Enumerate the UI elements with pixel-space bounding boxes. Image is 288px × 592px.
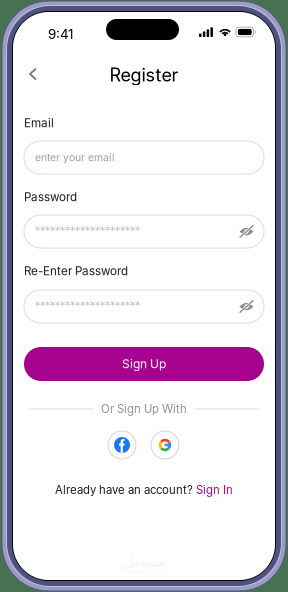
button[interactable]: Sign In — [196, 483, 233, 497]
button[interactable]: Back — [20, 61, 46, 87]
staticText: Already have an account? — [55, 483, 196, 497]
staticText: Or Sign Up With — [101, 402, 187, 416]
staticText: Sign In — [196, 483, 233, 497]
button[interactable]: Sign Up — [24, 347, 264, 381]
staticText: Sign Up — [122, 357, 166, 371]
staticText: Password — [24, 190, 77, 202]
staticText: ********************* — [35, 299, 140, 312]
button[interactable]: Sign up with Facebook — [108, 431, 136, 459]
staticText: enter your email — [35, 151, 115, 164]
staticText: Re-Enter Password — [24, 264, 128, 276]
staticText: ********************* — [35, 224, 140, 237]
staticText: Email — [24, 116, 54, 128]
staticText: Register — [109, 64, 178, 84]
staticText: 9:41 — [48, 26, 73, 39]
button[interactable]: Sign up with Google — [151, 431, 179, 459]
staticText: مستقل — [122, 553, 165, 567]
